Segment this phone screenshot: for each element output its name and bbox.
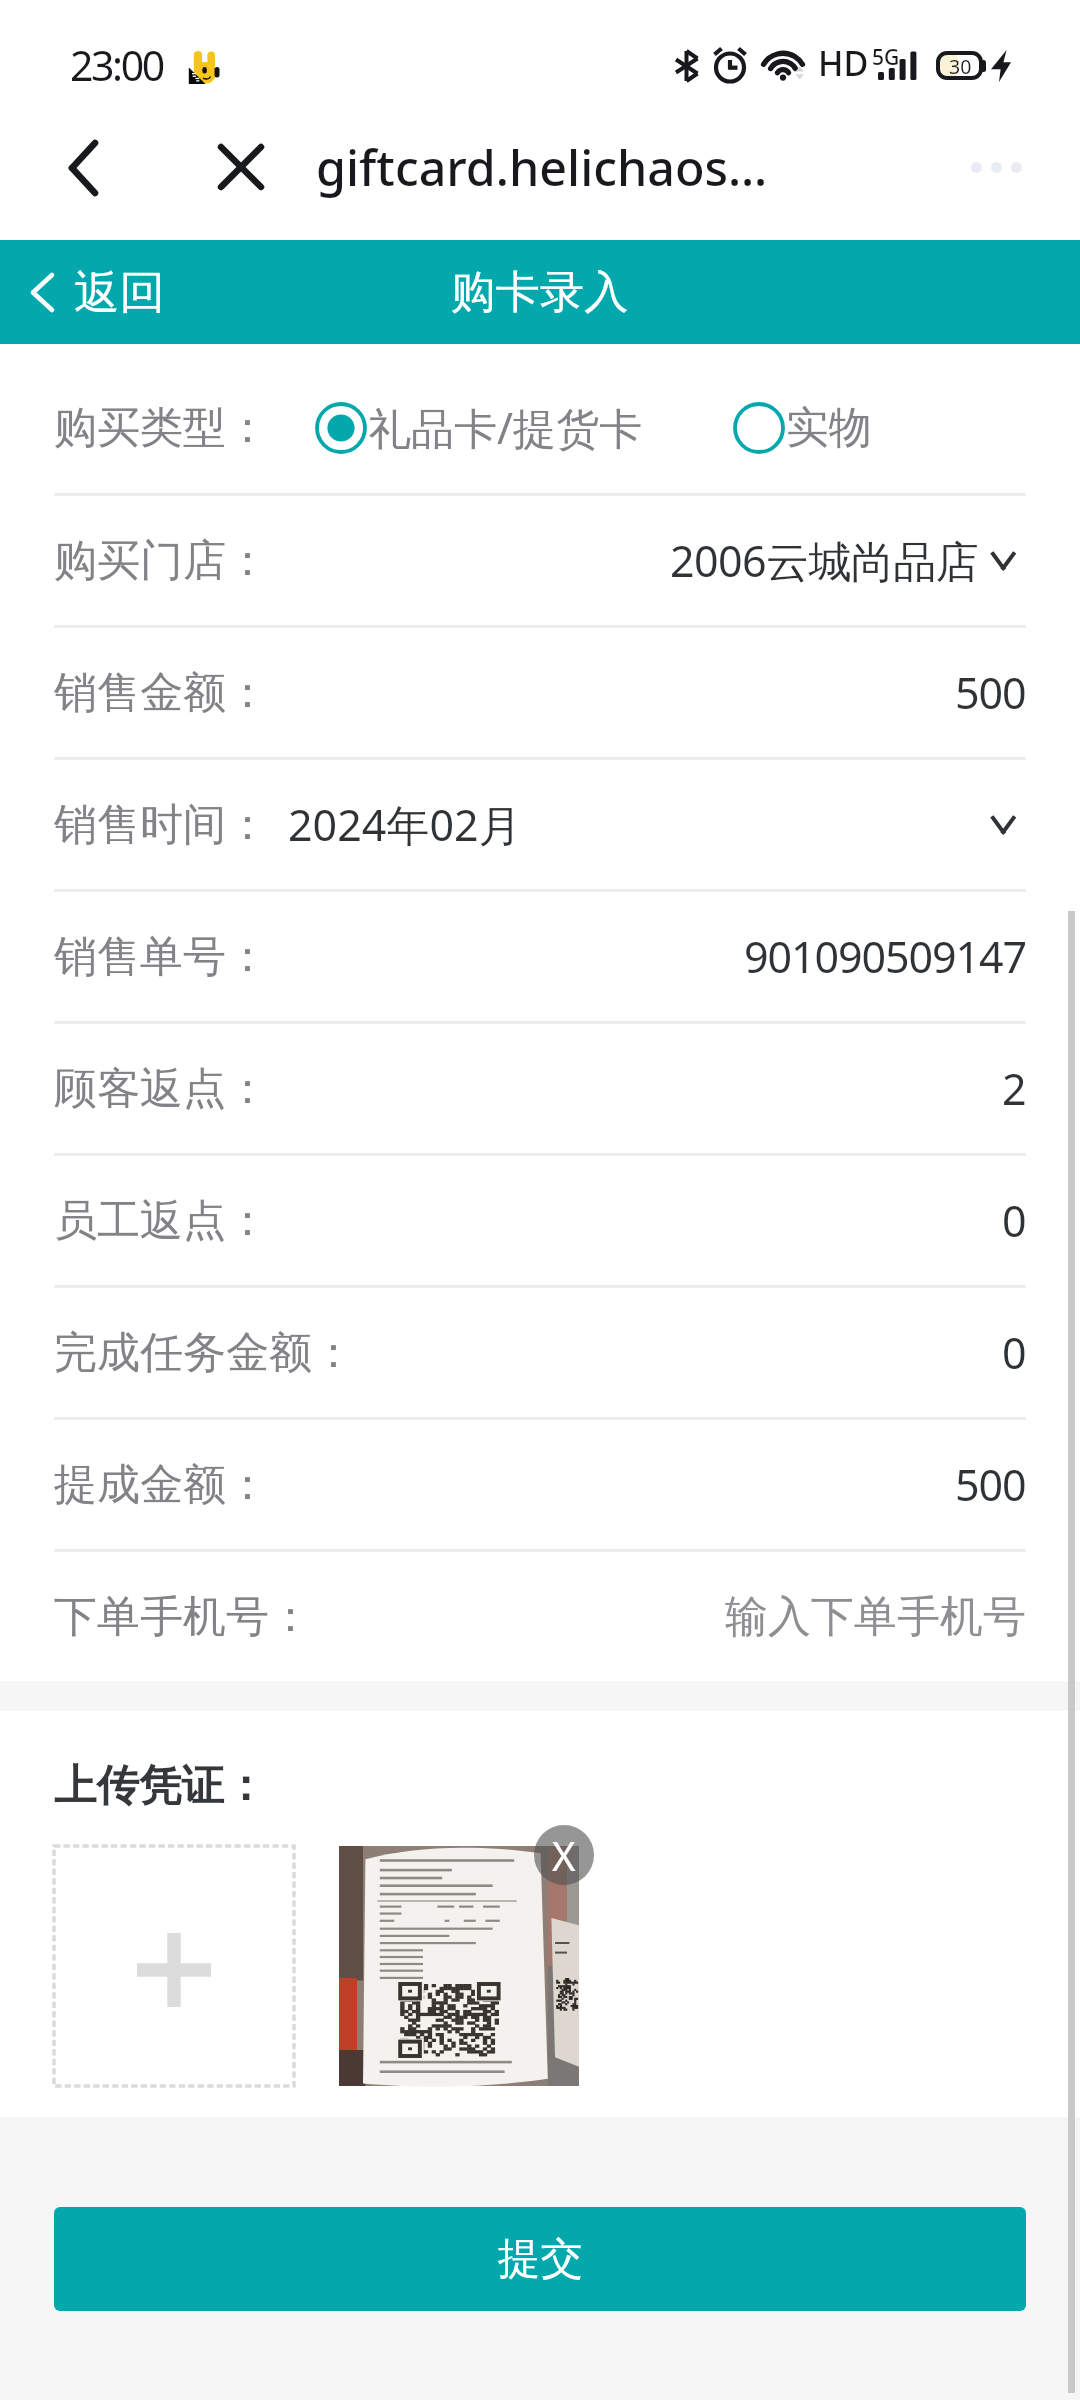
staticText: 2 (1002, 1059, 1026, 1118)
button[interactable]: 提交 (54, 2207, 1026, 2311)
staticText: 2006云城尚品店 (670, 531, 978, 590)
staticText: 5G (872, 43, 900, 72)
staticText: 901090509147 (744, 927, 1026, 986)
button[interactable]: 销售单号： (0, 892, 1080, 1021)
staticText: 员工返点： (54, 1194, 269, 1248)
staticText: 下单手机号： (54, 1590, 312, 1644)
staticText: 销售时间： (54, 798, 269, 852)
staticText: 2024年02月 (288, 795, 522, 854)
staticText: 完成任务金额： (54, 1326, 355, 1380)
button[interactable]: More options (945, 129, 1047, 205)
button[interactable]: 下单手机号： (0, 1552, 1080, 1681)
button[interactable]: Back (41, 126, 125, 210)
staticText: 提交 (498, 2232, 583, 2286)
button[interactable]: 完成任务金额： (0, 1288, 1080, 1417)
button[interactable]: 员工返点： (0, 1156, 1080, 1285)
staticText: 销售金额： (54, 666, 269, 720)
staticText: HD (818, 40, 869, 86)
staticText: 销售单号： (54, 930, 269, 984)
button[interactable]: Close (199, 125, 283, 209)
button[interactable]: Remove photo (534, 1825, 594, 1885)
staticText: 500 (955, 663, 1026, 722)
button[interactable]: 顾客返点： (0, 1024, 1080, 1153)
staticText: 购卡录入 (451, 264, 629, 320)
staticText: 0 (1002, 1191, 1026, 1250)
staticText: 顾客返点： (54, 1062, 269, 1116)
button[interactable]: 提成金额： (0, 1420, 1080, 1549)
staticText: 30 (949, 53, 972, 80)
button[interactable]: Add photo (54, 1846, 294, 2086)
staticText: 购买类型： (54, 401, 269, 455)
staticText: 上传凭证： (54, 1759, 267, 1813)
staticText: 返回 (74, 264, 166, 321)
button[interactable]: 实物 (732, 401, 872, 455)
button[interactable]: 礼品卡/提货卡 (314, 398, 642, 457)
button[interactable]: 销售金额： (0, 628, 1080, 757)
staticText: 实物 (786, 401, 872, 455)
staticText: 23:00 (70, 37, 163, 93)
staticText: 购买门店： (54, 534, 269, 588)
staticText: X (552, 1828, 576, 1882)
staticText: 0 (1002, 1323, 1026, 1382)
button[interactable]: 返回 (33, 240, 166, 344)
staticText: 礼品卡/提货卡 (368, 398, 642, 457)
button[interactable]: 购买门店： (0, 496, 1080, 625)
button[interactable]: 销售时间： (0, 760, 1080, 889)
staticText: 500 (955, 1455, 1026, 1514)
staticText: giftcard.helichaos… (316, 134, 768, 200)
staticText: 提成金额： (54, 1458, 269, 1512)
staticText: 输入下单手机号 (725, 1590, 1026, 1644)
